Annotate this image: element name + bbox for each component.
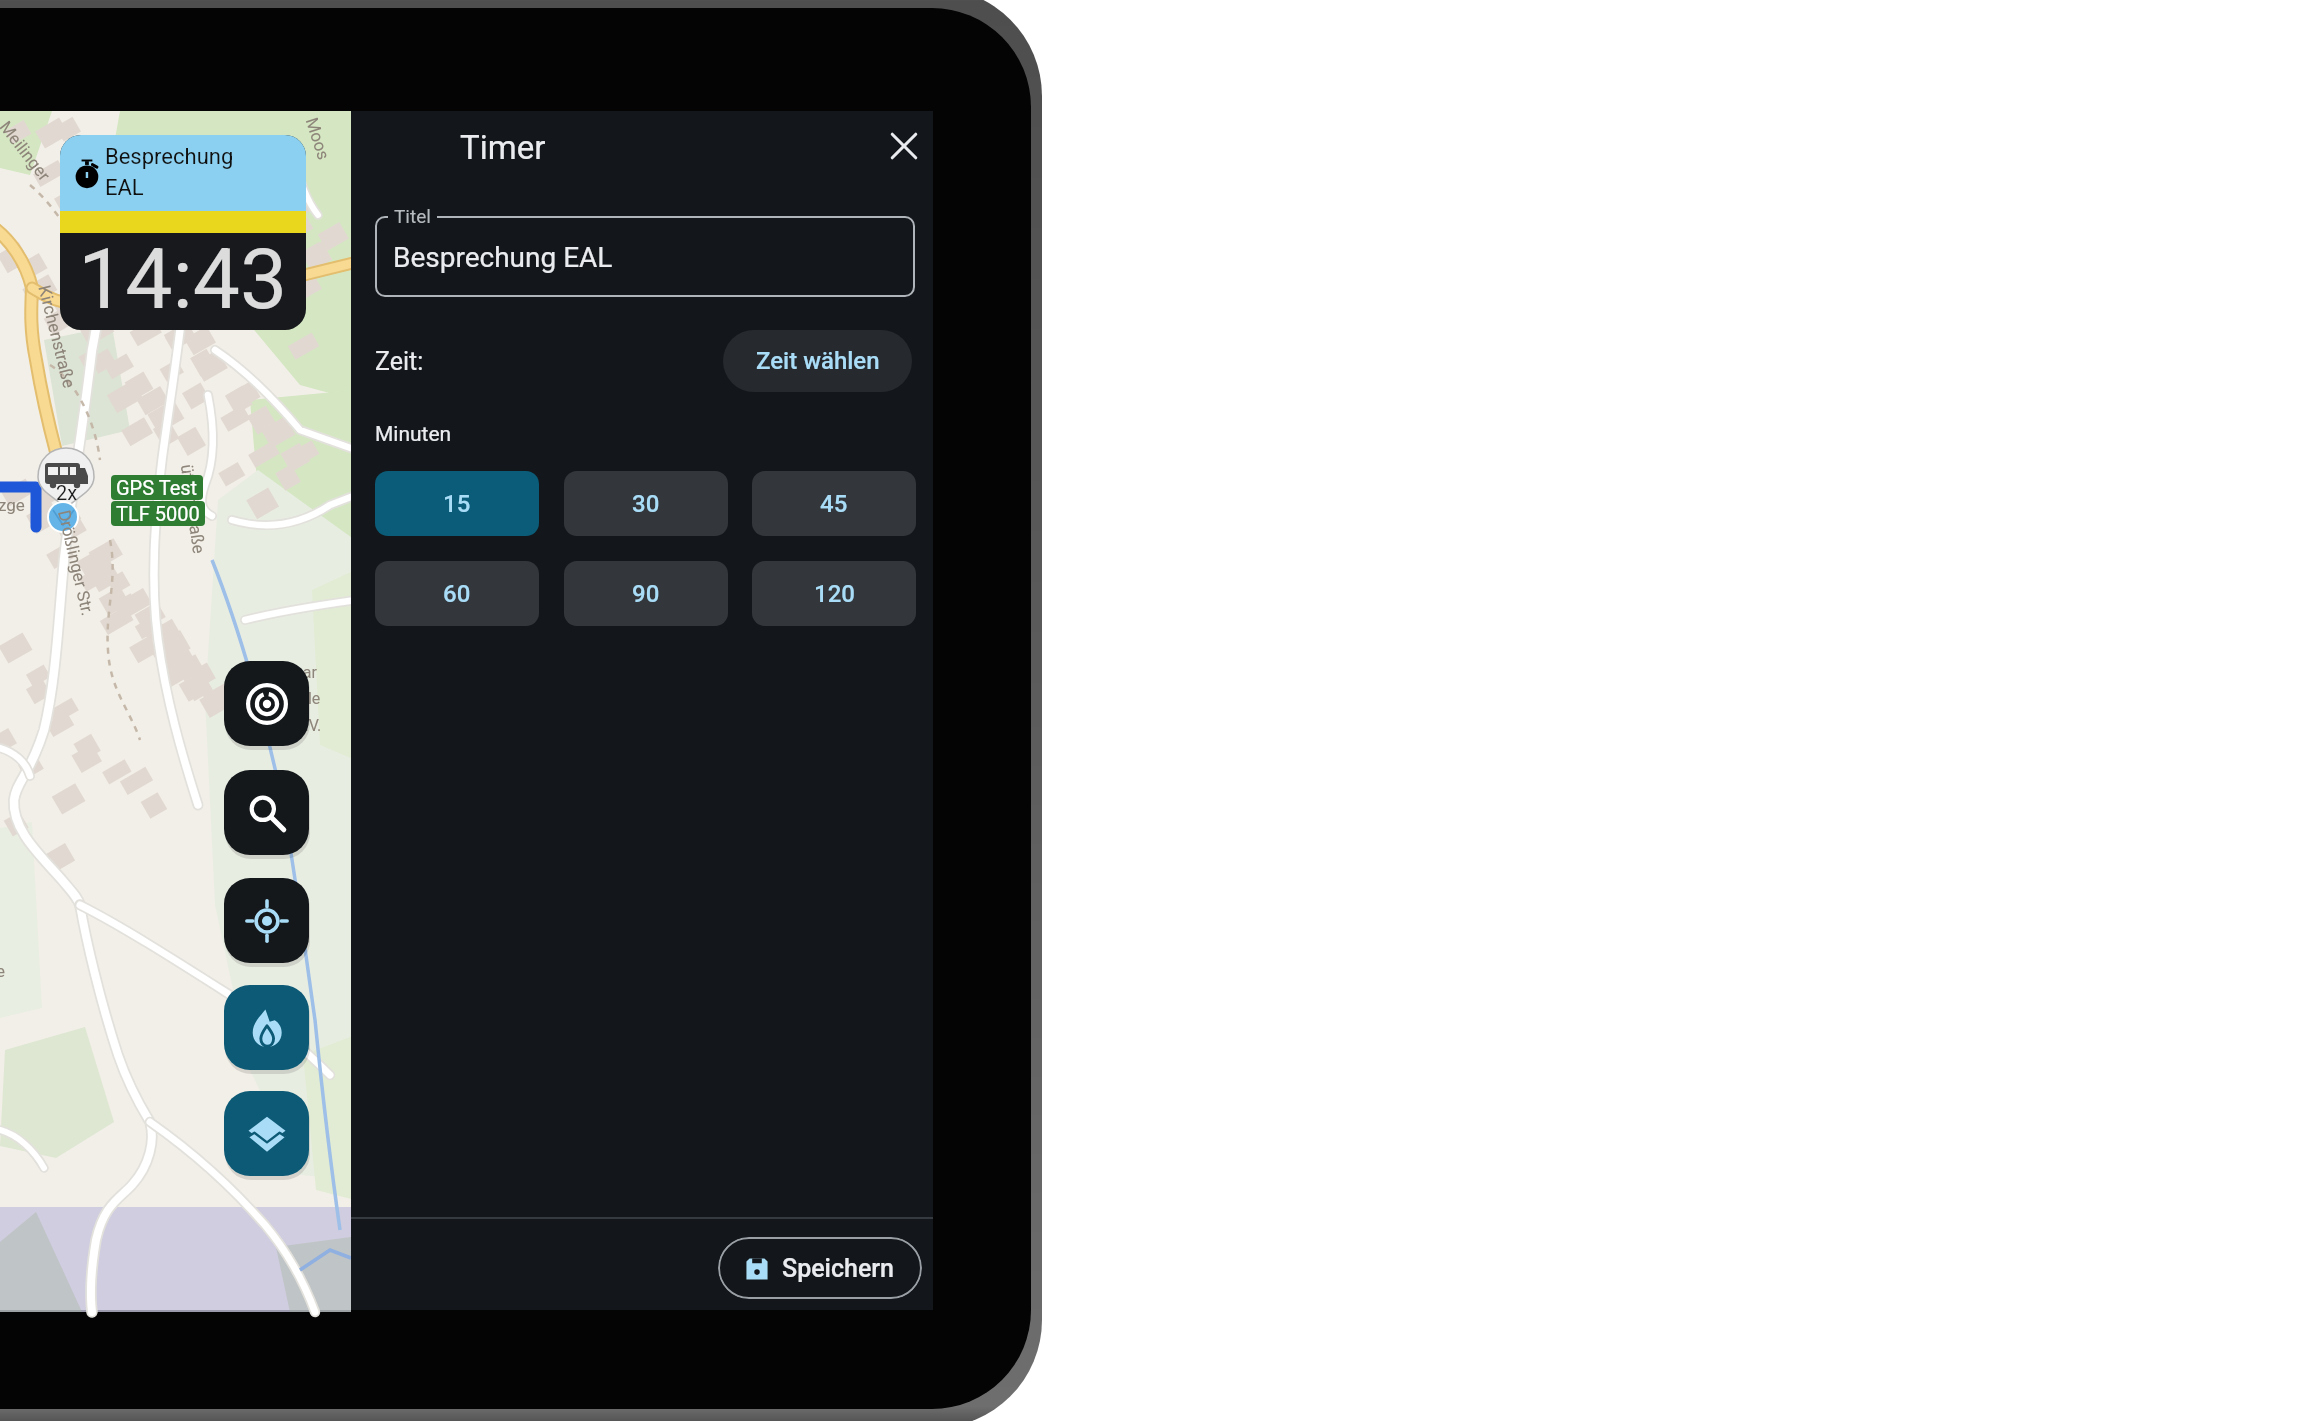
staticText: W ergar — [254, 663, 317, 682]
staticText: Minuten — [375, 422, 452, 447]
staticText: e — [0, 961, 6, 981]
button[interactable]: 90 — [564, 561, 728, 626]
staticText: e.V. — [288, 716, 322, 735]
staticText: Zeit wählen — [756, 347, 880, 375]
staticText: zge — [0, 495, 25, 515]
staticText: TLF 5000 — [116, 502, 200, 525]
staticText: Timer — [460, 128, 546, 167]
staticText: Titel — [394, 205, 431, 227]
staticText: 2x — [56, 481, 78, 504]
staticText: 30 — [632, 490, 660, 518]
staticText: öhle — [282, 689, 321, 708]
button[interactable]: 45 — [752, 471, 916, 536]
staticText: ützenstraße — [177, 463, 209, 555]
staticText: linger Str. — [199, 214, 265, 277]
staticText: GPS Test — [116, 476, 198, 499]
staticText: Meilinger — [0, 117, 54, 185]
staticText: 120 — [814, 580, 855, 608]
button[interactable]: Speichern — [718, 1237, 922, 1299]
button[interactable]: Close — [876, 118, 932, 174]
button[interactable]: Search — [224, 770, 309, 855]
button[interactable]: Zeit wählen — [723, 330, 912, 392]
staticText: Besprechung EAL — [393, 241, 613, 274]
staticText: Kirchenstraße — [34, 283, 79, 391]
staticText: 45 — [820, 490, 848, 518]
staticText: Drößlinger Str. — [54, 508, 98, 618]
button[interactable]: 120 — [752, 561, 916, 626]
staticText: Besprechung EAL — [105, 144, 255, 200]
button[interactable]: Target — [224, 661, 309, 746]
staticText: 90 — [632, 580, 660, 608]
button[interactable]: Besprechung EAL — [60, 135, 306, 330]
button[interactable]: 15 — [375, 471, 539, 536]
staticText: 60 — [443, 580, 471, 608]
button[interactable]: My location — [224, 878, 309, 963]
button[interactable]: Layers — [224, 1091, 309, 1176]
staticText: Speichern — [782, 1254, 895, 1283]
staticText: Moos — [302, 115, 334, 163]
button[interactable]: 60 — [375, 561, 539, 626]
staticText: Zeit: — [375, 347, 424, 376]
staticText: 14:43 — [78, 230, 288, 327]
button[interactable]: 30 — [564, 471, 728, 536]
button[interactable]: Fire hydrant — [224, 985, 309, 1070]
staticText: 15 — [443, 490, 471, 518]
